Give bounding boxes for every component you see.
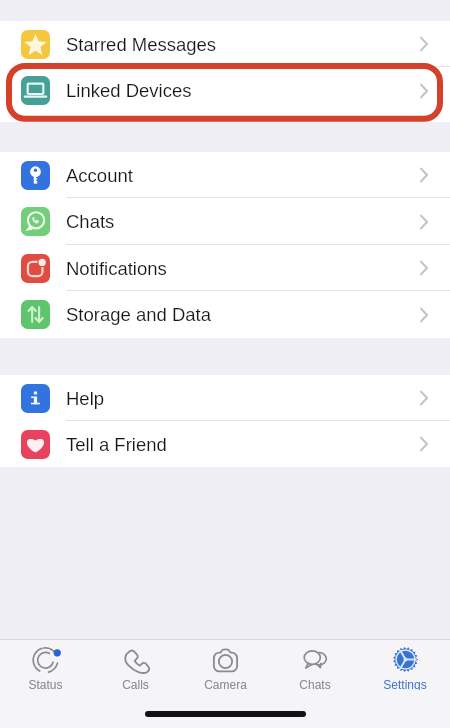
staticText: Account (66, 165, 133, 186)
other: Calls (122, 646, 149, 673)
staticText: Storage and Data (66, 304, 212, 325)
button[interactable]: Starred Messages (0, 21, 450, 67)
button[interactable]: Storage and Data (0, 291, 450, 338)
other: Chats (302, 646, 329, 673)
staticText: Help (66, 388, 105, 409)
button[interactable]: Chats (270, 640, 360, 690)
staticText: Status (28, 678, 63, 690)
button[interactable]: Chats (0, 198, 450, 245)
staticText: Calls (122, 678, 149, 690)
button[interactable]: Linked Devices (0, 67, 450, 114)
staticText: Starred Messages (66, 34, 217, 55)
staticText: Chats (299, 678, 331, 690)
staticText: Chats (66, 211, 115, 232)
button[interactable]: Notifications (0, 245, 450, 291)
button[interactable]: Tell a Friend (0, 421, 450, 467)
button[interactable]: Calls (90, 640, 180, 690)
button[interactable]: Settings (360, 640, 450, 690)
staticText: Settings (383, 678, 427, 690)
other: Status (32, 646, 59, 673)
button[interactable]: Account (0, 152, 450, 198)
staticText: Camera (204, 678, 247, 690)
button[interactable]: Status (0, 640, 90, 690)
staticText: Notifications (66, 258, 167, 279)
other: Camera (212, 646, 239, 673)
staticText: Linked Devices (66, 80, 192, 101)
other: Settings (392, 646, 419, 673)
button[interactable]: Camera (180, 640, 270, 690)
staticText: Tell a Friend (66, 434, 167, 455)
button[interactable]: Help (0, 375, 450, 421)
